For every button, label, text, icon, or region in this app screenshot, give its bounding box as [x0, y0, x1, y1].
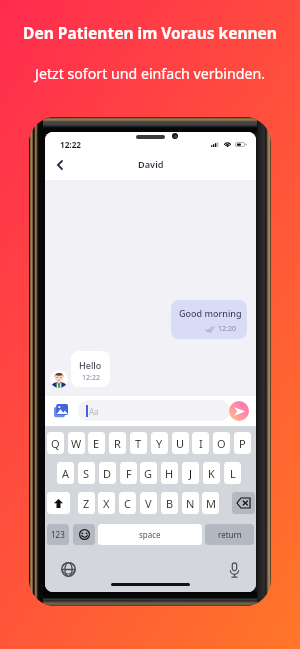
staticText: 12:20	[218, 324, 236, 334]
button[interactable]: K	[203, 462, 220, 484]
button[interactable]: E	[88, 432, 105, 454]
button[interactable]: Change keyboard	[61, 562, 76, 577]
staticText: Jetzt sofort und einfach verbinden.	[0, 64, 300, 83]
button[interactable]: R	[109, 432, 126, 454]
button[interactable]: Good morning	[171, 300, 247, 339]
button[interactable]: Z	[78, 492, 95, 514]
staticText: X	[103, 496, 110, 511]
button[interactable]: Voice input	[229, 562, 240, 578]
staticText: A	[62, 466, 70, 481]
button[interactable]: W	[68, 432, 85, 454]
button[interactable]: L	[224, 462, 241, 484]
button[interactable]: O	[213, 432, 230, 454]
button[interactable]: V	[140, 492, 157, 514]
staticText: Hello	[79, 359, 102, 371]
button[interactable]: N	[182, 492, 199, 514]
button[interactable]: C	[119, 492, 136, 514]
staticText: J	[189, 466, 193, 481]
staticText: W	[71, 436, 82, 451]
staticText: C	[124, 496, 131, 511]
staticText: Good morning	[179, 307, 242, 319]
button[interactable]: B	[161, 492, 178, 514]
button[interactable]: Aa	[78, 400, 230, 421]
button[interactable]: Emoji	[73, 524, 95, 545]
button[interactable]: I	[192, 432, 209, 454]
button[interactable]: H	[161, 462, 178, 484]
button[interactable]: J	[182, 462, 199, 484]
button[interactable]: A	[57, 462, 74, 484]
button[interactable]: T	[130, 432, 147, 454]
staticText: Q	[51, 436, 60, 451]
staticText: R	[114, 436, 121, 451]
button[interactable]: Hello	[71, 351, 110, 387]
staticText: V	[145, 496, 152, 511]
button[interactable]: space	[98, 524, 202, 545]
staticText: M	[206, 496, 216, 511]
staticText: L	[230, 466, 236, 481]
staticText: N	[186, 496, 195, 511]
staticText: S	[83, 466, 90, 481]
button[interactable]: Attach image	[54, 404, 68, 418]
button[interactable]: G	[140, 462, 157, 484]
button[interactable]: 123	[47, 524, 69, 545]
staticText: B	[166, 496, 174, 511]
staticText: Z	[83, 496, 90, 511]
staticText: F	[126, 466, 132, 481]
staticText: I	[199, 436, 203, 451]
button[interactable]: M	[202, 492, 219, 514]
button[interactable]: X	[98, 492, 115, 514]
staticText: space	[139, 529, 161, 540]
staticText: Y	[156, 436, 163, 451]
staticText: Den Patienten im Voraus kennen	[0, 22, 300, 43]
button[interactable]: Y	[151, 432, 168, 454]
staticText: 12:22	[60, 139, 82, 150]
staticText: E	[93, 436, 100, 451]
staticText: T	[135, 436, 142, 451]
staticText: P	[239, 436, 246, 451]
button[interactable]: S	[78, 462, 95, 484]
button[interactable]: U	[172, 432, 189, 454]
button[interactable]: return	[205, 524, 254, 545]
button[interactable]: F	[120, 462, 137, 484]
button[interactable]: Send	[229, 401, 249, 421]
staticText: return	[218, 529, 242, 540]
staticText: G	[144, 466, 153, 481]
staticText: H	[165, 466, 174, 481]
button[interactable]: Backspace	[232, 492, 255, 514]
staticText: David	[138, 158, 164, 171]
staticText: Aa	[89, 406, 99, 417]
staticText: K	[208, 466, 215, 481]
staticText: U	[176, 436, 185, 451]
button[interactable]: Back	[49, 149, 70, 180]
staticText: D	[103, 466, 112, 481]
button[interactable]: Shift	[47, 492, 70, 514]
button[interactable]: Q	[47, 432, 64, 454]
staticText: 12:22	[82, 373, 100, 383]
staticText: 123	[51, 529, 65, 540]
button[interactable]: D	[99, 462, 116, 484]
staticText: O	[217, 436, 226, 451]
button[interactable]: P	[234, 432, 251, 454]
